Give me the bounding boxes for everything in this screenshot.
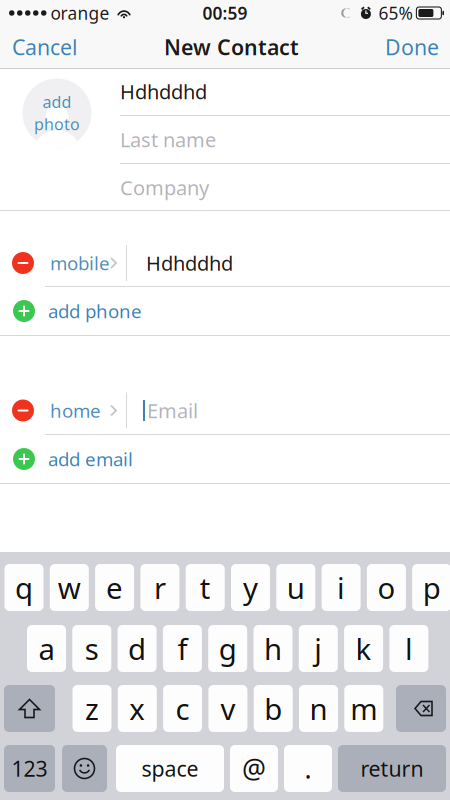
button[interactable]: @ — [230, 745, 278, 792]
staticText: r — [154, 568, 166, 607]
staticText: home — [50, 398, 101, 423]
staticText: g — [219, 629, 237, 668]
staticText: add — [42, 91, 71, 112]
staticText: . — [304, 751, 311, 786]
staticText: add email — [48, 447, 133, 471]
button[interactable]: k — [344, 625, 383, 672]
staticText: Hdhddhd — [120, 78, 207, 105]
staticText: 00:59 — [202, 1, 247, 24]
staticText: x — [129, 689, 145, 728]
button[interactable]: add email — [0, 435, 450, 483]
staticText: c — [176, 689, 190, 728]
staticText: p — [423, 568, 441, 607]
button[interactable]: i — [322, 564, 361, 611]
button[interactable]: q — [4, 564, 43, 611]
button[interactable]: r — [140, 564, 179, 611]
button[interactable]: w — [50, 564, 89, 611]
button[interactable]: home — [0, 387, 450, 434]
staticText: Email — [147, 397, 198, 424]
staticText: @ — [242, 751, 266, 786]
button[interactable]: Cancel — [0, 26, 91, 68]
button[interactable]: Shift — [4, 685, 55, 732]
staticText: d — [128, 629, 146, 668]
button[interactable]: Add photo — [22, 78, 91, 147]
staticText: m — [350, 689, 377, 728]
button[interactable]: a — [27, 625, 66, 672]
button[interactable]: n — [299, 685, 338, 732]
staticText: w — [58, 568, 81, 607]
staticText: o — [377, 568, 395, 607]
button[interactable]: z — [72, 685, 111, 732]
button[interactable]: y — [231, 564, 270, 611]
staticText: Company — [120, 174, 209, 201]
button[interactable]: m — [344, 685, 383, 732]
button[interactable]: l — [389, 625, 428, 672]
staticText: j — [314, 629, 322, 668]
button[interactable]: f — [163, 625, 202, 672]
staticText: return — [360, 754, 423, 783]
button[interactable]: d — [118, 625, 157, 672]
button[interactable]: add phone — [0, 287, 450, 335]
button[interactable]: c — [163, 685, 202, 732]
staticText: h — [264, 629, 282, 668]
staticText: l — [405, 629, 413, 668]
staticText: Done — [385, 33, 439, 61]
staticText: b — [264, 689, 282, 728]
staticText: orange — [50, 1, 109, 24]
staticText: Last name — [120, 126, 216, 153]
staticText: photo — [34, 113, 80, 135]
staticText: Hdhddhd — [146, 250, 233, 276]
staticText: New Contact — [164, 33, 299, 61]
staticText: q — [15, 568, 33, 607]
button[interactable]: x — [118, 685, 157, 732]
staticText: u — [287, 568, 305, 607]
button[interactable]: g — [208, 625, 247, 672]
staticText: y — [243, 568, 258, 607]
staticText: z — [85, 689, 99, 728]
staticText: add phone — [48, 299, 142, 323]
staticText: a — [38, 629, 54, 668]
button[interactable]: 123 — [4, 745, 55, 792]
staticText: s — [85, 629, 99, 668]
button[interactable]: Done — [372, 26, 450, 68]
button[interactable]: space — [116, 745, 224, 792]
button[interactable]: return — [338, 745, 446, 792]
staticText: t — [200, 568, 211, 607]
button[interactable]: j — [299, 625, 338, 672]
staticText: f — [177, 629, 187, 668]
button[interactable]: u — [276, 564, 315, 611]
staticText: e — [106, 568, 123, 607]
staticText: space — [141, 754, 198, 783]
button[interactable]: b — [254, 685, 293, 732]
button[interactable]: o — [367, 564, 406, 611]
button[interactable]: Delete — [396, 685, 446, 732]
staticText: i — [337, 568, 345, 607]
button[interactable]: s — [72, 625, 111, 672]
staticText: mobile — [50, 251, 110, 275]
button[interactable]: p — [412, 564, 450, 611]
staticText: n — [309, 689, 327, 728]
staticText: k — [356, 629, 372, 668]
staticText: 65% — [378, 1, 412, 24]
button[interactable]: v — [208, 685, 247, 732]
staticText: 123 — [11, 754, 47, 783]
button[interactable]: . — [284, 745, 332, 792]
staticText: v — [220, 689, 235, 728]
button[interactable]: Emoji — [62, 745, 107, 792]
button[interactable]: mobile — [0, 240, 450, 286]
button[interactable]: t — [186, 564, 225, 611]
staticText: Cancel — [12, 33, 78, 61]
button[interactable]: e — [95, 564, 134, 611]
button[interactable]: h — [253, 625, 292, 672]
